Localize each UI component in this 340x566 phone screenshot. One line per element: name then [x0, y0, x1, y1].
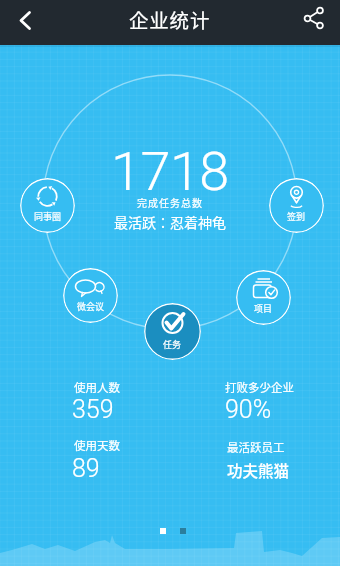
- button[interactable]: [290, 0, 340, 45]
- staticText: 最活跃员工: [227, 439, 285, 456]
- staticText: 最活跃：忍着神龟: [114, 212, 226, 232]
- staticText: 使用人数: [74, 379, 120, 396]
- button[interactable]: 项目: [236, 270, 291, 325]
- staticText: 1718: [111, 140, 229, 203]
- staticText: 完成任务总数: [137, 195, 203, 209]
- staticText: 任务: [163, 338, 182, 351]
- staticText: 项目: [254, 302, 273, 315]
- button[interactable]: 微会议: [63, 268, 118, 323]
- staticText: 打败多少企业: [225, 379, 294, 396]
- staticText: 企业统计: [129, 5, 211, 33]
- staticText: 同事圈: [34, 210, 62, 223]
- staticText: 89: [72, 454, 100, 483]
- staticText: 微会议: [77, 300, 105, 313]
- staticText: 签到: [287, 210, 306, 223]
- button[interactable]: 签到: [269, 178, 324, 233]
- button[interactable]: 同事圈: [20, 178, 75, 233]
- staticText: 359: [72, 395, 114, 424]
- button[interactable]: 任务: [144, 303, 201, 360]
- staticText: 使用天数: [74, 437, 120, 454]
- staticText: 功夫熊猫: [227, 459, 290, 481]
- staticText: 90%: [225, 395, 272, 424]
- button[interactable]: [0, 0, 52, 45]
